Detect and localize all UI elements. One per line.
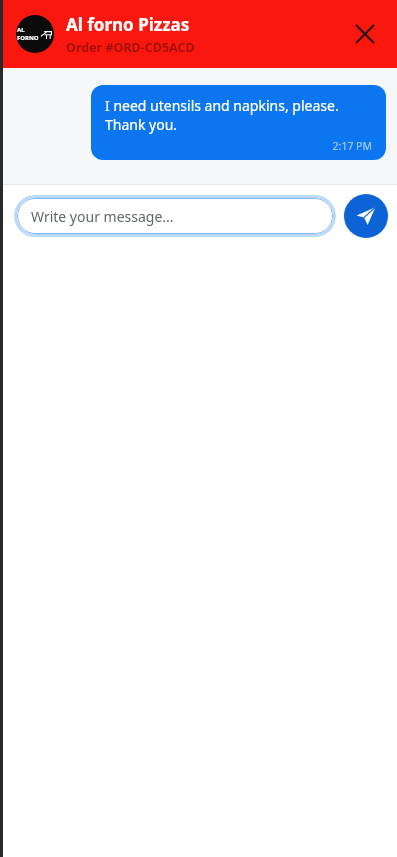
button[interactable]: Close xyxy=(343,12,387,56)
button[interactable]: Send xyxy=(344,194,388,238)
button[interactable]: Write your message... xyxy=(17,198,333,234)
button[interactable]: I need utensils and napkins, please. Tha… xyxy=(91,85,386,160)
staticText: FORNO xyxy=(17,34,39,42)
staticText: 2:17 PM xyxy=(105,139,372,153)
staticText: Order #ORD-CD5ACD xyxy=(66,39,195,56)
staticText: AL xyxy=(17,26,25,34)
staticText: Al forno Pizzas xyxy=(66,13,190,36)
staticText: Write your message... xyxy=(31,207,174,226)
staticText: I need utensils and napkins, please. Tha… xyxy=(105,96,372,134)
